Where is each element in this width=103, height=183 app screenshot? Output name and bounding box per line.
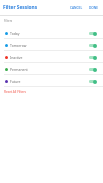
button[interactable]: Reset All Filters <box>0 87 103 97</box>
staticText: Tomorrow <box>10 43 27 48</box>
button[interactable]: Toggle filter <box>89 55 97 60</box>
staticText: Future <box>10 79 21 84</box>
staticText: DONE <box>89 6 99 10</box>
button[interactable]: Toggle filter <box>89 79 97 84</box>
button[interactable]: Today <box>0 27 103 39</box>
staticText: Permanent <box>10 67 28 72</box>
staticText: Inactive <box>10 55 23 60</box>
staticText: Today <box>10 31 20 36</box>
button[interactable]: Inactive <box>0 51 103 63</box>
button[interactable]: Permanent <box>0 63 103 75</box>
button[interactable]: Toggle filter <box>89 31 97 36</box>
button[interactable]: Tomorrow <box>0 39 103 51</box>
button[interactable]: Future <box>0 75 103 87</box>
staticText: Reset All Filters <box>4 90 27 94</box>
button[interactable]: CANCEL <box>70 6 83 10</box>
staticText: Filters <box>4 19 13 23</box>
button[interactable]: Toggle filter <box>89 67 97 72</box>
staticText: CANCEL <box>70 6 83 10</box>
staticText: Filter Sessions <box>3 4 38 11</box>
button[interactable]: DONE <box>89 6 99 10</box>
button[interactable]: Toggle filter <box>89 43 97 48</box>
